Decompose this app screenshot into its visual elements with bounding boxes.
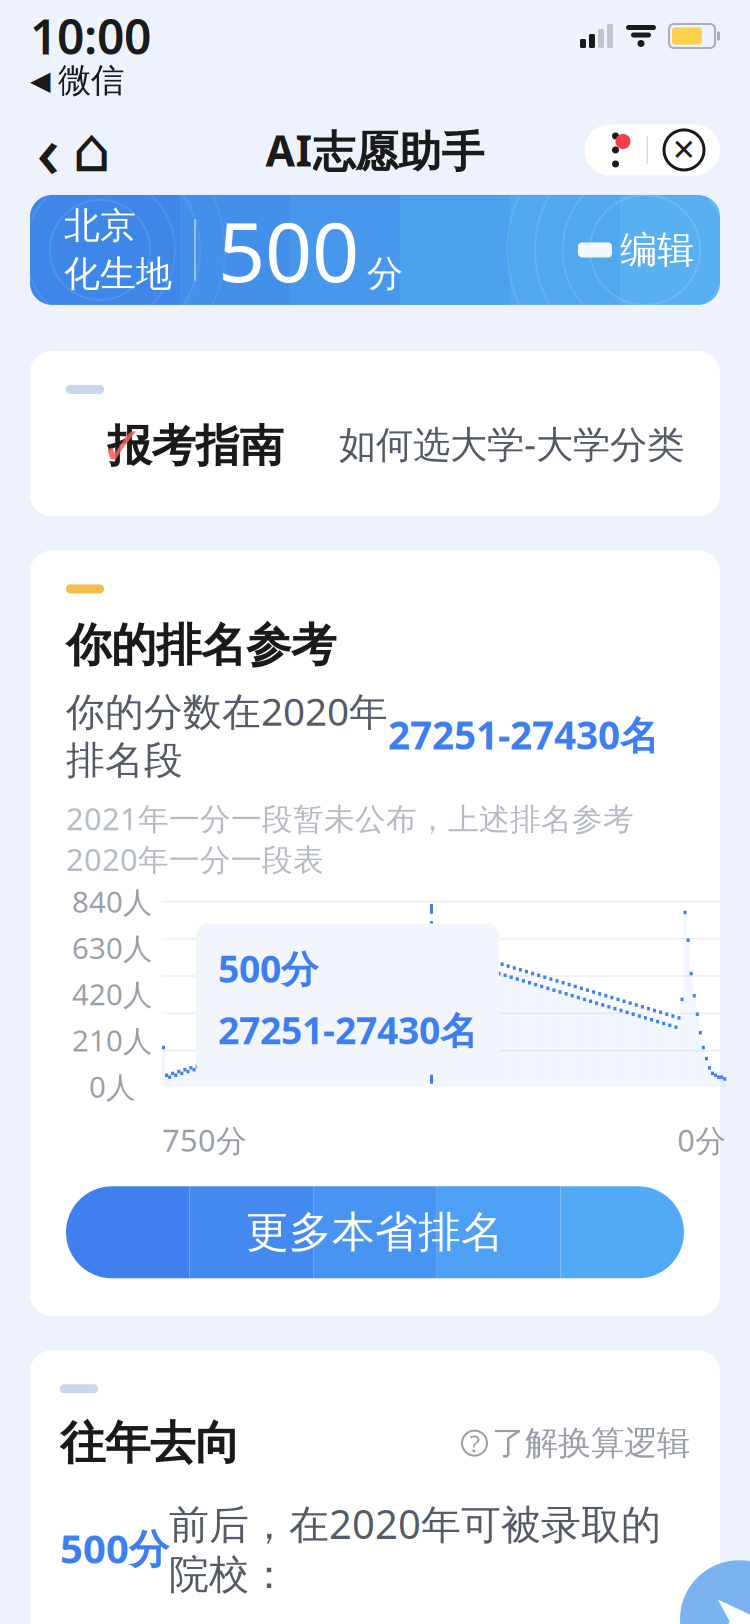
staticText: ?: [469, 1427, 479, 1459]
staticText: 如何选大学-大学分类: [339, 419, 684, 468]
staticText: 0人: [89, 1067, 135, 1106]
staticText: 报考指南: [107, 419, 283, 473]
staticText: 27251-27430名: [388, 709, 659, 760]
staticText: 420人: [72, 974, 152, 1013]
staticText: 27251-27430名: [218, 1005, 477, 1055]
staticText: ✕: [671, 133, 696, 167]
staticText: ✓: [100, 416, 145, 476]
button[interactable]: Home: [66, 124, 118, 176]
staticText: 630人: [72, 928, 152, 967]
staticText: 前后，在2020年可被录取的院校：: [169, 1497, 661, 1599]
staticText: ➤: [710, 1580, 750, 1624]
staticText: 750分: [162, 1120, 247, 1160]
staticText: 500分: [60, 1521, 169, 1575]
staticText: 编辑: [620, 227, 694, 273]
staticText: 500分: [218, 943, 318, 993]
staticText: 你的分数在2020年排名段: [66, 685, 388, 784]
staticText: 840人: [72, 882, 152, 921]
button[interactable]: 北京: [30, 195, 720, 305]
staticText: 10:00: [30, 4, 151, 68]
staticText: 微信: [58, 60, 124, 101]
staticText: 北京: [64, 204, 136, 248]
staticText: AI志愿助手: [265, 121, 484, 178]
staticText: 更多本省排名: [246, 1206, 504, 1258]
button[interactable]: Close: [648, 125, 720, 175]
button[interactable]: 报考指南: [30, 351, 720, 516]
staticText: 2021年一分一段暂未公布，上述排名参考2020年一分一段表: [66, 798, 634, 879]
staticText: 210人: [72, 1021, 152, 1060]
staticText: ⌂: [72, 115, 111, 185]
staticText: 500: [218, 195, 359, 305]
staticText: 0分: [677, 1120, 726, 1160]
button[interactable]: Send feedback: [680, 1560, 750, 1624]
button[interactable]: 更多本省排名: [66, 1186, 684, 1278]
button[interactable]: More options: [584, 125, 646, 175]
button[interactable]: ?: [462, 1423, 690, 1464]
staticText: 化生地: [64, 252, 172, 296]
staticText: ◀: [30, 65, 51, 96]
staticText: ‹: [36, 102, 59, 198]
staticText: 你的排名参考: [66, 617, 336, 673]
button[interactable]: Back: [30, 124, 66, 176]
staticText: 往年去向: [60, 1415, 240, 1471]
staticText: 了解换算逻辑: [492, 1423, 690, 1464]
staticText: 分: [367, 252, 403, 296]
